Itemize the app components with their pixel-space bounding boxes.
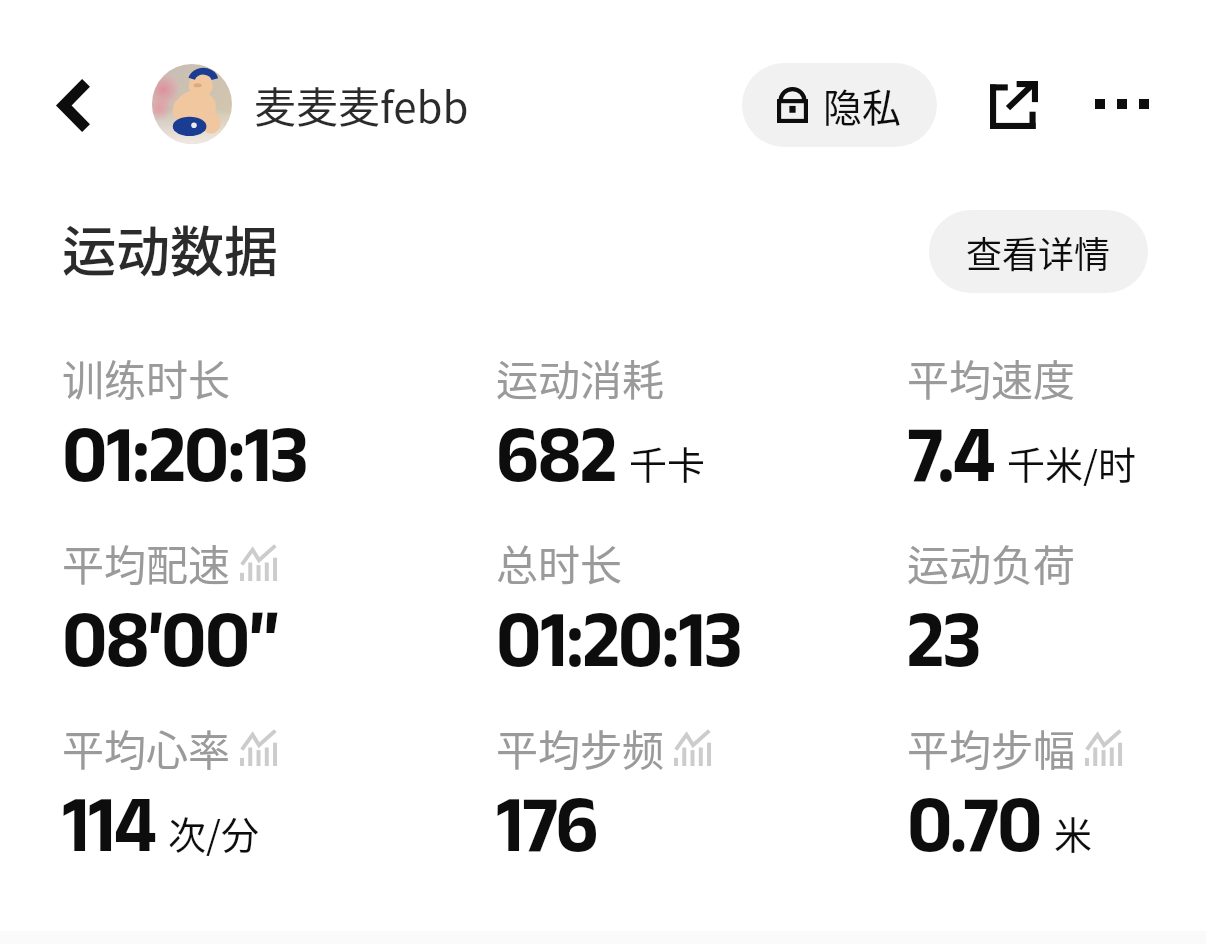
button[interactable]: Back <box>39 70 109 140</box>
staticText: 平均步频 <box>496 717 665 778</box>
staticText: 08′00″ <box>62 594 278 682</box>
staticText: 麦麦麦febb <box>254 74 469 135</box>
staticText: 千卡 <box>629 435 706 490</box>
button[interactable]: 查看详情 <box>929 210 1148 293</box>
staticText: 总时长 <box>496 532 623 593</box>
staticText: 23 <box>907 594 980 682</box>
button[interactable]: 隐私 <box>742 63 937 147</box>
staticText: 运动负荷 <box>907 532 1076 593</box>
staticText: 运动消耗 <box>496 347 665 408</box>
staticText: 682 <box>496 409 616 497</box>
staticText: 01:20:13 <box>496 594 741 682</box>
staticText: 运动数据 <box>62 209 278 287</box>
button[interactable]: 麦麦麦febb <box>152 54 469 154</box>
staticText: 114 <box>62 779 155 867</box>
staticText: 平均速度 <box>907 347 1076 408</box>
staticText: 平均配速 <box>62 532 231 593</box>
staticText: 查看详情 <box>966 226 1111 278</box>
staticText: 0.70 <box>907 779 1041 867</box>
staticText: 千米/时 <box>1007 435 1136 490</box>
button[interactable]: More options <box>1086 68 1158 140</box>
staticText: 01:20:13 <box>62 409 307 497</box>
staticText: 7.4 <box>907 409 994 497</box>
staticText: 平均心率 <box>62 717 231 778</box>
staticText: 训练时长 <box>62 347 231 408</box>
staticText: 次/分 <box>168 805 259 860</box>
button[interactable]: Share <box>977 68 1051 142</box>
staticText: 176 <box>496 779 598 867</box>
staticText: 隐私 <box>823 77 902 133</box>
staticText: 平均步幅 <box>907 717 1076 778</box>
staticText: 米 <box>1054 805 1093 860</box>
